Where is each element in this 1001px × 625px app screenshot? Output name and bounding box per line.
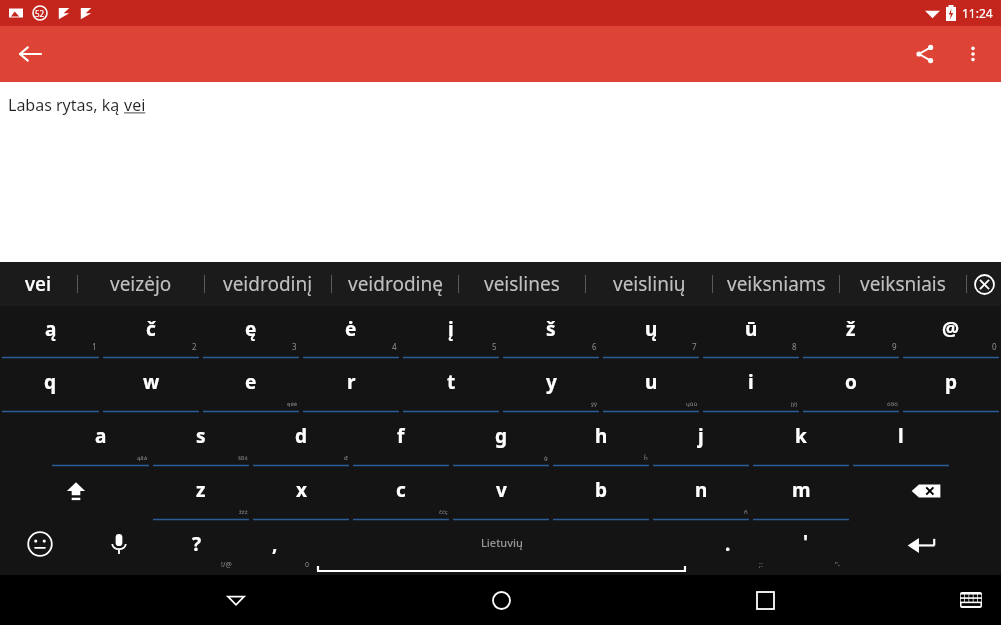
button[interactable]: g xyxy=(451,413,551,467)
button[interactable]: k xyxy=(751,413,851,467)
button[interactable]: veiksniams xyxy=(713,262,839,306)
button[interactable]: Clear suggestions xyxy=(967,262,1001,306)
staticText: ę xyxy=(245,316,257,342)
button[interactable]: b xyxy=(551,467,651,521)
staticText: ų xyxy=(645,316,658,342)
staticText: , xyxy=(272,531,278,557)
button[interactable]: u xyxy=(601,359,701,413)
staticText: šßś xyxy=(238,454,248,462)
staticText: y xyxy=(546,369,557,395)
button[interactable]: į xyxy=(401,306,501,359)
button[interactable]: Recent apps xyxy=(737,575,793,625)
button[interactable]: a xyxy=(50,413,151,467)
staticText: 6 xyxy=(592,341,597,352)
staticText: 0 xyxy=(992,341,997,352)
staticText: veislinių xyxy=(613,271,686,297)
staticText: 9 xyxy=(892,341,897,352)
staticText: ė xyxy=(345,316,357,342)
button[interactable]: h xyxy=(551,413,651,467)
staticText: ;: xyxy=(759,560,763,570)
staticText: m xyxy=(792,477,811,503)
staticText: ž xyxy=(846,316,856,342)
staticText: t xyxy=(447,369,456,395)
button[interactable]: veislines xyxy=(459,262,585,306)
staticText: u xyxy=(645,369,658,395)
button[interactable]: ? xyxy=(158,521,236,575)
staticText: veiksniams xyxy=(727,271,826,297)
button[interactable]: , xyxy=(236,521,314,575)
button[interactable]: Home xyxy=(473,575,529,625)
staticText: veiksniais xyxy=(860,271,946,297)
button[interactable]: Backspace xyxy=(851,467,1001,521)
staticText: 3 xyxy=(292,341,297,352)
staticText: vei xyxy=(124,94,146,116)
button[interactable]: ę xyxy=(201,306,301,359)
button[interactable]: Share xyxy=(901,30,949,78)
button[interactable]: c xyxy=(351,467,451,521)
button[interactable]: s xyxy=(151,413,251,467)
button[interactable]: veizėjo xyxy=(78,262,204,306)
staticText: k xyxy=(795,423,807,449)
staticText: veidrodinį xyxy=(223,271,313,297)
button[interactable]: f xyxy=(351,413,451,467)
button[interactable]: l xyxy=(851,413,951,467)
staticText: e xyxy=(245,369,257,395)
button[interactable]: Back xyxy=(6,30,54,78)
button[interactable]: ' xyxy=(767,521,845,575)
button[interactable]: p xyxy=(901,359,1001,413)
staticText: vei xyxy=(25,271,52,297)
button[interactable]: Switch keyboard xyxy=(953,582,989,618)
button[interactable]: n xyxy=(651,467,751,521)
button[interactable]: x xyxy=(251,467,351,521)
button[interactable]: More options xyxy=(949,30,997,78)
button[interactable]: veiksniais xyxy=(840,262,966,306)
button[interactable]: . xyxy=(689,521,767,575)
button[interactable]: vei xyxy=(0,262,77,306)
button[interactable]: ą xyxy=(0,306,101,359)
staticText: ñ xyxy=(744,508,748,516)
button[interactable]: veidrodinę xyxy=(332,262,458,306)
button[interactable]: Enter xyxy=(845,521,1001,575)
button[interactable]: Voice input xyxy=(79,521,158,575)
button[interactable]: š xyxy=(501,306,601,359)
staticText: 11:24 xyxy=(962,5,993,21)
staticText: c xyxy=(396,477,406,503)
button[interactable]: v xyxy=(451,467,551,521)
button[interactable]: r xyxy=(301,359,401,413)
button[interactable]: j xyxy=(651,413,751,467)
button[interactable]: e xyxy=(201,359,301,413)
button[interactable]: w xyxy=(101,359,201,413)
staticText: 7 xyxy=(692,341,697,352)
staticText: h xyxy=(595,423,608,449)
button[interactable]: Shift xyxy=(0,467,151,521)
staticText: a xyxy=(95,423,107,449)
button[interactable]: ž xyxy=(801,306,901,359)
button[interactable]: veidrodinį xyxy=(205,262,331,306)
button[interactable]: z xyxy=(151,467,251,521)
button[interactable]: Space xyxy=(314,521,689,575)
staticText: q xyxy=(44,369,57,395)
button[interactable]: ų xyxy=(601,306,701,359)
staticText: "- xyxy=(835,560,841,570)
button[interactable]: d xyxy=(251,413,351,467)
button[interactable]: o xyxy=(801,359,901,413)
button[interactable]: t xyxy=(401,359,501,413)
staticText: č xyxy=(146,316,156,342)
button[interactable]: m xyxy=(751,467,851,521)
button[interactable]: č xyxy=(101,306,201,359)
button[interactable]: y xyxy=(501,359,601,413)
staticText: ģ xyxy=(544,454,548,462)
staticText: l xyxy=(898,423,904,449)
staticText: @ xyxy=(942,316,960,342)
staticText: ųūù xyxy=(686,400,698,408)
staticText: s xyxy=(196,423,206,449)
button[interactable]: @ xyxy=(901,306,1001,359)
button[interactable]: i xyxy=(701,359,801,413)
button[interactable]: Emoji xyxy=(0,521,79,575)
button[interactable]: ė xyxy=(301,306,401,359)
staticText: 52 xyxy=(35,8,45,19)
button[interactable]: veislinių xyxy=(586,262,712,306)
button[interactable]: ū xyxy=(701,306,801,359)
button[interactable]: q xyxy=(0,359,101,413)
button[interactable]: Hide keyboard xyxy=(208,575,264,625)
